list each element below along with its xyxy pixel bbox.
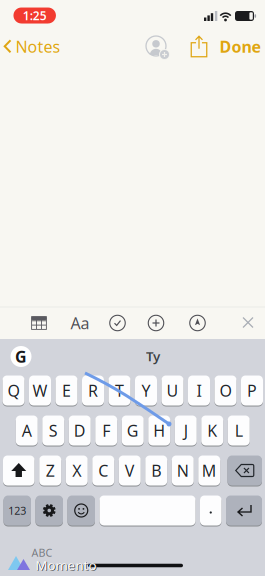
button[interactable]: A — [16, 415, 38, 446]
staticText: K — [207, 420, 217, 441]
staticText: X — [72, 460, 81, 481]
staticText: T — [115, 380, 124, 401]
staticText: 123 — [8, 503, 26, 518]
button[interactable]: Insert table — [31, 316, 47, 330]
button[interactable]: I — [188, 375, 210, 406]
staticText: Z — [46, 460, 55, 481]
button[interactable]: Emoji — [67, 495, 95, 526]
staticText: Q — [7, 380, 19, 401]
button[interactable]: X — [66, 455, 88, 486]
staticText: Momento — [36, 557, 97, 574]
button[interactable]: J — [175, 415, 197, 446]
button[interactable]: S — [42, 415, 64, 446]
button[interactable]: L — [228, 415, 250, 446]
staticText: Y — [141, 380, 150, 401]
staticText: S — [49, 420, 58, 441]
button[interactable]: K — [201, 415, 223, 446]
button[interactable]: Dismiss keyboard — [242, 316, 254, 328]
button[interactable]: Share — [190, 35, 208, 58]
button[interactable]: R — [82, 375, 104, 406]
button[interactable]: F — [95, 415, 117, 446]
staticText: Momento — [35, 556, 96, 574]
button[interactable]: Period — [200, 495, 221, 526]
button[interactable]: Recording in progress, 1:25 — [13, 7, 56, 23]
button[interactable]: Gboard menu — [10, 346, 31, 367]
staticText: N — [177, 460, 189, 481]
button[interactable]: Text formatting — [70, 312, 89, 334]
button[interactable]: Space — [99, 495, 195, 526]
staticText: J — [184, 420, 188, 441]
staticText: O — [219, 380, 231, 401]
staticText: I — [196, 380, 201, 401]
button[interactable]: Shift — [3, 455, 34, 486]
staticText: Done — [219, 36, 261, 57]
button[interactable]: Checklist — [109, 315, 125, 331]
staticText: C — [98, 460, 108, 481]
button[interactable]: 123 — [3, 495, 31, 526]
button[interactable]: W — [29, 375, 51, 406]
staticText: B — [151, 460, 161, 481]
staticText: Ty — [146, 347, 160, 365]
staticText: P — [247, 380, 257, 401]
button[interactable]: N — [172, 455, 194, 486]
staticText: W — [32, 380, 47, 401]
button[interactable]: Return — [226, 495, 262, 526]
button[interactable]: Done — [219, 36, 261, 57]
button[interactable]: M — [198, 455, 220, 486]
button[interactable]: Suggestion Ty — [146, 347, 160, 365]
staticText: 1:25 — [23, 7, 47, 23]
staticText: D — [74, 420, 86, 441]
staticText: V — [125, 460, 135, 481]
button[interactable]: Q — [2, 375, 24, 406]
staticText: F — [102, 420, 110, 441]
staticText: E — [62, 380, 71, 401]
staticText: L — [235, 420, 243, 441]
button[interactable]: Delete — [227, 455, 262, 486]
button[interactable]: Back to Notes — [3, 36, 60, 56]
staticText: H — [153, 420, 165, 441]
staticText: A — [22, 420, 32, 441]
staticText: ABC — [31, 545, 52, 560]
button[interactable]: T — [108, 375, 130, 406]
button[interactable]: Keyboard settings — [35, 495, 63, 526]
button[interactable]: G — [122, 415, 144, 446]
button[interactable]: E — [55, 375, 77, 406]
button[interactable]: H — [148, 415, 170, 446]
button[interactable]: Z — [39, 455, 61, 486]
button[interactable]: D — [69, 415, 91, 446]
staticText: G — [127, 420, 139, 441]
button[interactable]: B — [145, 455, 167, 486]
button[interactable]: Add attachment — [148, 315, 164, 331]
button[interactable]: Add people — [145, 35, 169, 59]
button[interactable]: Y — [135, 375, 157, 406]
button[interactable]: U — [161, 375, 183, 406]
staticText: G — [15, 346, 27, 367]
staticText: Aa — [70, 312, 89, 334]
staticText: R — [88, 380, 98, 401]
button[interactable]: P — [241, 375, 263, 406]
staticText: Notes — [15, 36, 60, 57]
button[interactable]: C — [92, 455, 114, 486]
staticText: U — [166, 380, 178, 401]
button[interactable]: Markup — [189, 315, 205, 331]
button[interactable]: V — [119, 455, 141, 486]
button[interactable]: O — [214, 375, 236, 406]
staticText: M — [202, 460, 217, 481]
